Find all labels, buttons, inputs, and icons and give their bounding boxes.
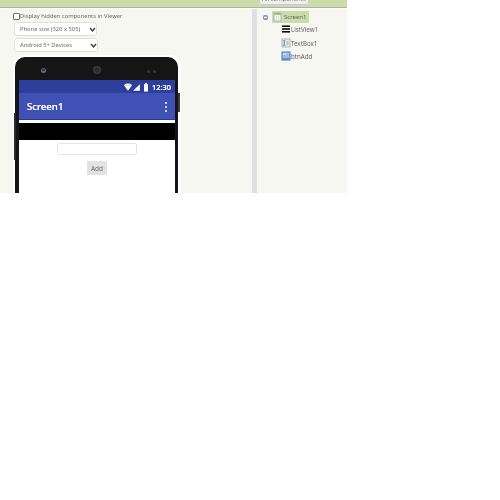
button[interactable]: Display hidden components in Viewer	[13, 12, 123, 20]
staticText: btnAdd	[291, 52, 313, 60]
button[interactable]: All components	[259, 0, 309, 5]
button[interactable]: Phone size (320 x 505)	[14, 22, 97, 36]
staticText: TextBox1	[291, 39, 318, 47]
button[interactable]: Screen1	[274, 11, 307, 23]
staticText: Screen1	[284, 13, 307, 21]
button[interactable]: More options	[159, 100, 173, 114]
staticText: Android 5+ Devices	[20, 41, 72, 49]
staticText: Phone size (320 x 505)	[20, 25, 81, 33]
staticText: Screen1	[27, 100, 64, 113]
button[interactable]: Add	[87, 161, 107, 175]
button[interactable]: Collapse Screen1	[261, 13, 270, 22]
button[interactable]: Android 5+ Devices	[14, 38, 98, 52]
button[interactable]: ListView1	[282, 25, 319, 33]
staticText: All components	[262, 0, 306, 3]
button[interactable]: TextBox1	[282, 39, 318, 47]
staticText: 12:30	[152, 82, 171, 92]
staticText: Add	[91, 164, 103, 173]
staticText: ListView1	[291, 25, 319, 33]
button[interactable]	[57, 143, 137, 155]
button[interactable]: btnAdd	[282, 52, 313, 60]
staticText: Display hidden components in Viewer	[20, 12, 123, 20]
